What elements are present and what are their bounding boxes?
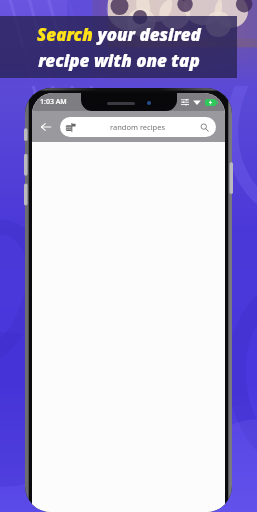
button[interactable]: Back — [32, 111, 60, 142]
staticText: random recipes — [110, 122, 166, 132]
button[interactable]: random recipes — [60, 117, 216, 137]
staticText: 1:03 AM — [40, 97, 67, 107]
staticText: Search — [37, 23, 93, 46]
staticText: your desired — [93, 23, 201, 46]
staticText: recipe with one tap — [38, 49, 200, 72]
